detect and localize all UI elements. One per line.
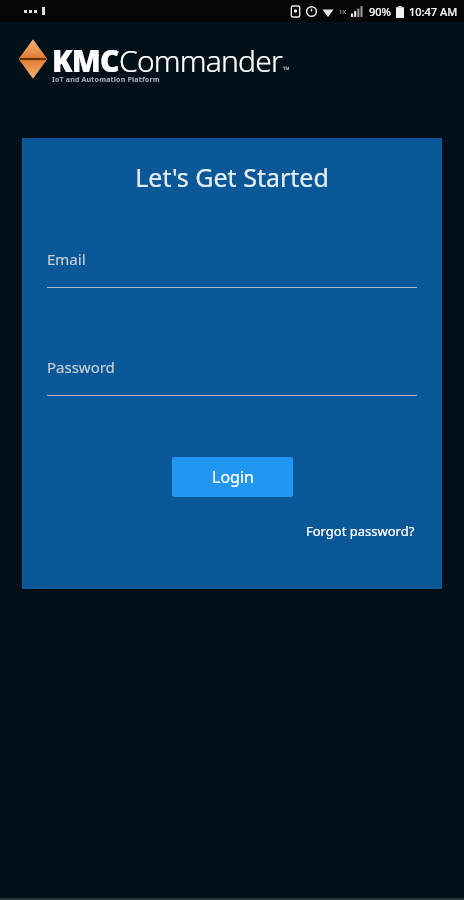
staticText: Password (47, 357, 115, 377)
staticText: Login (212, 466, 254, 488)
staticText: 90% (369, 4, 391, 19)
button[interactable]: Login (172, 457, 293, 497)
staticText: ™ (283, 63, 290, 75)
staticText: Forgot password? (306, 522, 415, 540)
staticText: Let's Get Started (47, 160, 417, 194)
button[interactable]: Forgot password? (304, 519, 417, 543)
staticText: Commander (119, 40, 283, 81)
button[interactable]: Password (47, 357, 417, 396)
staticText: 1X (339, 8, 346, 16)
button[interactable]: Email (47, 249, 417, 288)
staticText: IoT and Automation Platform (52, 75, 160, 85)
staticText: 10:47 AM (409, 4, 458, 19)
staticText: Email (47, 249, 86, 269)
staticText: KMC (52, 40, 119, 81)
